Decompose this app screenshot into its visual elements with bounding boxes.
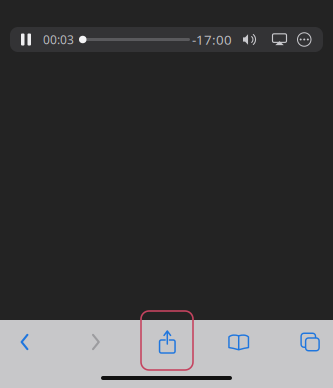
button[interactable]: More (286, 27, 311, 52)
button[interactable]: Tabs (288, 320, 332, 364)
button[interactable]: AirPlay (260, 27, 286, 52)
button[interactable]: Share (145, 320, 189, 364)
staticText: -17:00 (192, 31, 232, 48)
button[interactable]: Back (2, 320, 46, 364)
staticText: 00:03 (43, 31, 74, 47)
button[interactable]: Pause (13, 27, 39, 52)
button[interactable]: Forward (74, 320, 118, 364)
button[interactable]: Bookmarks (217, 320, 261, 364)
button[interactable]: Volume (238, 27, 260, 52)
